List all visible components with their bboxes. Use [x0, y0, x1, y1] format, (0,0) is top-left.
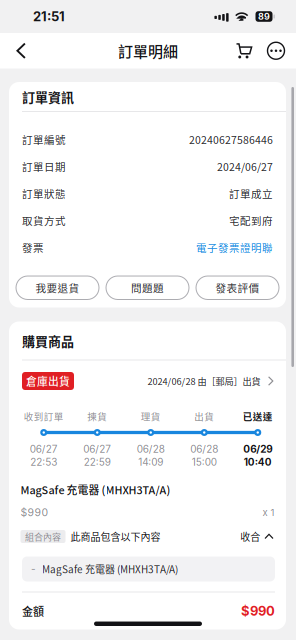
staticText: 金額	[22, 603, 44, 619]
staticText: 取貨方式	[22, 213, 66, 228]
staticText: 發表評價	[215, 280, 259, 295]
staticText: 組合內容	[25, 530, 61, 543]
button[interactable]: More options	[260, 34, 292, 68]
button[interactable]: Back	[5, 34, 37, 68]
staticText: 06/29	[243, 443, 272, 455]
staticText: 宅配到府	[229, 213, 273, 228]
staticText: 倉庫出貨	[26, 373, 70, 389]
staticText: 06/28	[137, 443, 165, 455]
staticText: 20240627586446	[189, 132, 273, 147]
staticText: 問題題	[131, 280, 164, 295]
staticText: 2024/06/27	[217, 159, 273, 174]
staticText: 15:00	[192, 456, 217, 468]
staticText: $990	[241, 603, 275, 619]
staticText: 訂單資訊	[22, 87, 74, 106]
staticText: 訂單成立	[229, 186, 273, 201]
staticText: $990	[20, 506, 48, 519]
staticText: 理貨	[141, 409, 161, 423]
staticText: 訂單編號	[22, 132, 66, 147]
staticText: MagSafe 充電器 (MHXH3TA/A)	[20, 482, 170, 497]
staticText: 已送達	[243, 409, 273, 423]
button[interactable]: Shopping cart	[228, 34, 260, 68]
staticText: 10:40	[244, 456, 272, 468]
staticText: 我要退貨	[35, 280, 79, 295]
button[interactable]: 倉庫出貨	[9, 360, 286, 401]
staticText: 收到訂單	[24, 409, 64, 423]
button[interactable]: 問題題	[106, 276, 189, 299]
staticText: 出貨	[194, 409, 214, 423]
staticText: 22:53	[30, 456, 57, 468]
staticText: 訂單明細	[118, 40, 178, 62]
staticText: 14:09	[138, 456, 163, 468]
staticText: 89	[258, 11, 270, 22]
staticText: 06/28	[190, 443, 218, 455]
staticText: 22:59	[84, 456, 111, 468]
staticText: 收合	[240, 529, 260, 544]
staticText: -	[31, 563, 36, 575]
staticText: 06/27	[30, 443, 58, 455]
staticText: 21:51	[33, 9, 65, 24]
button[interactable]: 發表評價	[196, 276, 279, 299]
staticText: 2024/06/28 由［郵局］出貨	[148, 374, 261, 388]
staticText: 購買商品	[22, 331, 74, 350]
staticText: 06/27	[83, 443, 111, 455]
staticText: 揀貨	[87, 409, 107, 423]
button[interactable]: 組合內容	[9, 528, 286, 544]
staticText: MagSafe 充電器 (MHXH3TA/A)	[42, 562, 178, 576]
staticText: 電子發票證明聯	[196, 240, 273, 255]
staticText: 訂單日期	[22, 159, 66, 174]
button[interactable]: 我要退貨	[16, 276, 99, 299]
staticText: 訂單狀態	[22, 186, 66, 201]
staticText: 發票	[22, 240, 44, 255]
staticText: 此商品包含以下內容	[70, 529, 160, 544]
staticText: x 1	[262, 507, 274, 518]
